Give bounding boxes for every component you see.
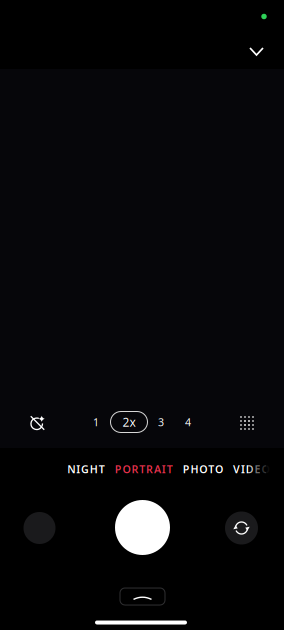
- staticText: PORTRAIT: [115, 462, 173, 476]
- staticText: VIDEO: [233, 462, 269, 476]
- staticText: 2x: [122, 414, 135, 430]
- button[interactable]: 2x: [110, 410, 148, 434]
- button[interactable]: PHOTO: [178, 455, 228, 483]
- staticText: 3: [158, 415, 164, 429]
- button[interactable]: Switch camera: [225, 511, 258, 544]
- button[interactable]: Take picture: [115, 500, 170, 555]
- button[interactable]: Night mode off: [27, 413, 47, 433]
- staticText: 4: [185, 415, 191, 429]
- button[interactable]: More camera options: [114, 583, 170, 609]
- button[interactable]: 4: [169, 410, 207, 434]
- button[interactable]: 1: [77, 410, 115, 434]
- button[interactable]: PORTRAIT: [110, 455, 178, 483]
- button[interactable]: NIGHT: [62, 455, 110, 483]
- staticText: 1: [93, 415, 99, 429]
- button[interactable]: Depth control: [234, 410, 260, 436]
- button[interactable]: Hide camera controls: [236, 35, 276, 67]
- button[interactable]: 3: [142, 410, 180, 434]
- button[interactable]: VIDEO: [228, 455, 274, 483]
- staticText: PHOTO: [183, 462, 223, 476]
- staticText: NIGHT: [67, 462, 105, 476]
- button[interactable]: Photo library: [23, 512, 55, 544]
